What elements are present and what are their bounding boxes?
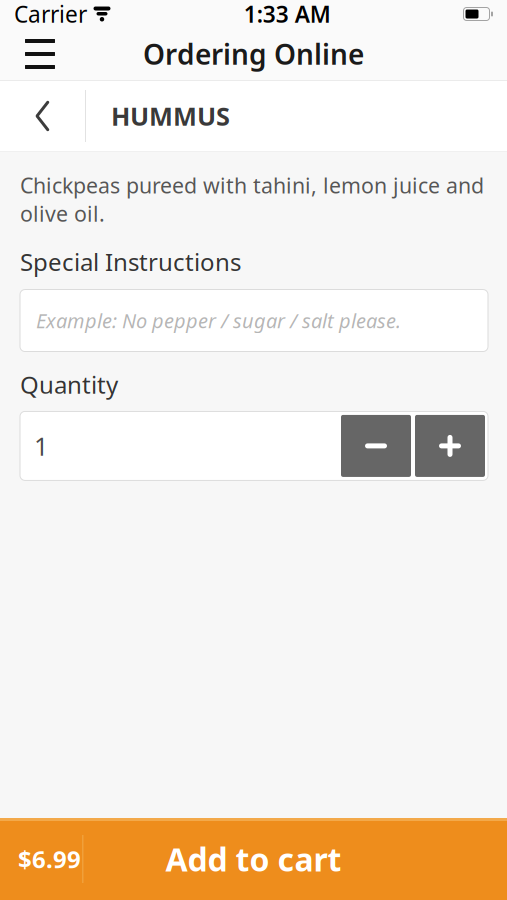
button[interactable]: Menu xyxy=(12,28,68,80)
button[interactable]: Add to cart xyxy=(0,818,507,900)
staticText: HUMMUS xyxy=(111,99,230,133)
staticText: Chickpeas pureed with tahini, lemon juic… xyxy=(20,171,484,228)
staticText: Ordering Online xyxy=(143,35,364,73)
staticText: Special Instructions xyxy=(20,246,241,278)
button[interactable]: Decrease quantity xyxy=(341,415,411,477)
staticText: 1:33 AM xyxy=(244,0,331,29)
staticText: Carrier xyxy=(14,0,87,29)
staticText: 1 xyxy=(34,429,48,463)
staticText: Quantity xyxy=(20,368,118,400)
staticText: Add to cart xyxy=(165,838,341,880)
staticText: Example: No pepper / sugar / salt please… xyxy=(36,307,401,334)
button[interactable]: Increase quantity xyxy=(415,415,485,477)
staticText: $6.99 xyxy=(18,843,81,875)
button[interactable]: Back xyxy=(0,80,85,152)
